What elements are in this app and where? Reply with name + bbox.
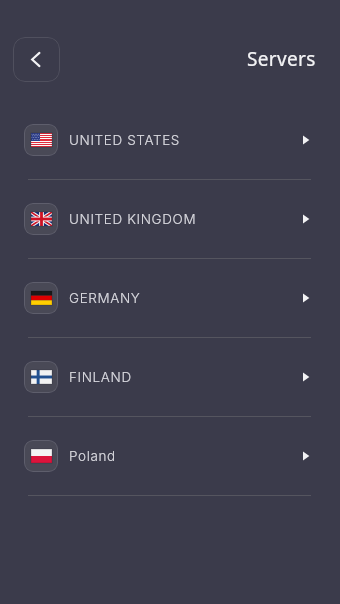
staticText: Servers bbox=[247, 46, 316, 72]
button[interactable]: Back bbox=[13, 37, 60, 82]
staticText: FINLAND bbox=[69, 369, 132, 385]
button[interactable]: Poland bbox=[0, 417, 340, 495]
staticText: UNITED STATES bbox=[69, 132, 180, 148]
staticText: GERMANY bbox=[69, 290, 141, 306]
button[interactable]: UNITED STATES bbox=[0, 101, 340, 179]
staticText: Poland bbox=[69, 448, 116, 464]
button[interactable]: FINLAND bbox=[0, 338, 340, 416]
button[interactable]: GERMANY bbox=[0, 259, 340, 337]
staticText: UNITED KINGDOM bbox=[69, 211, 197, 227]
button[interactable]: UNITED KINGDOM bbox=[0, 180, 340, 258]
